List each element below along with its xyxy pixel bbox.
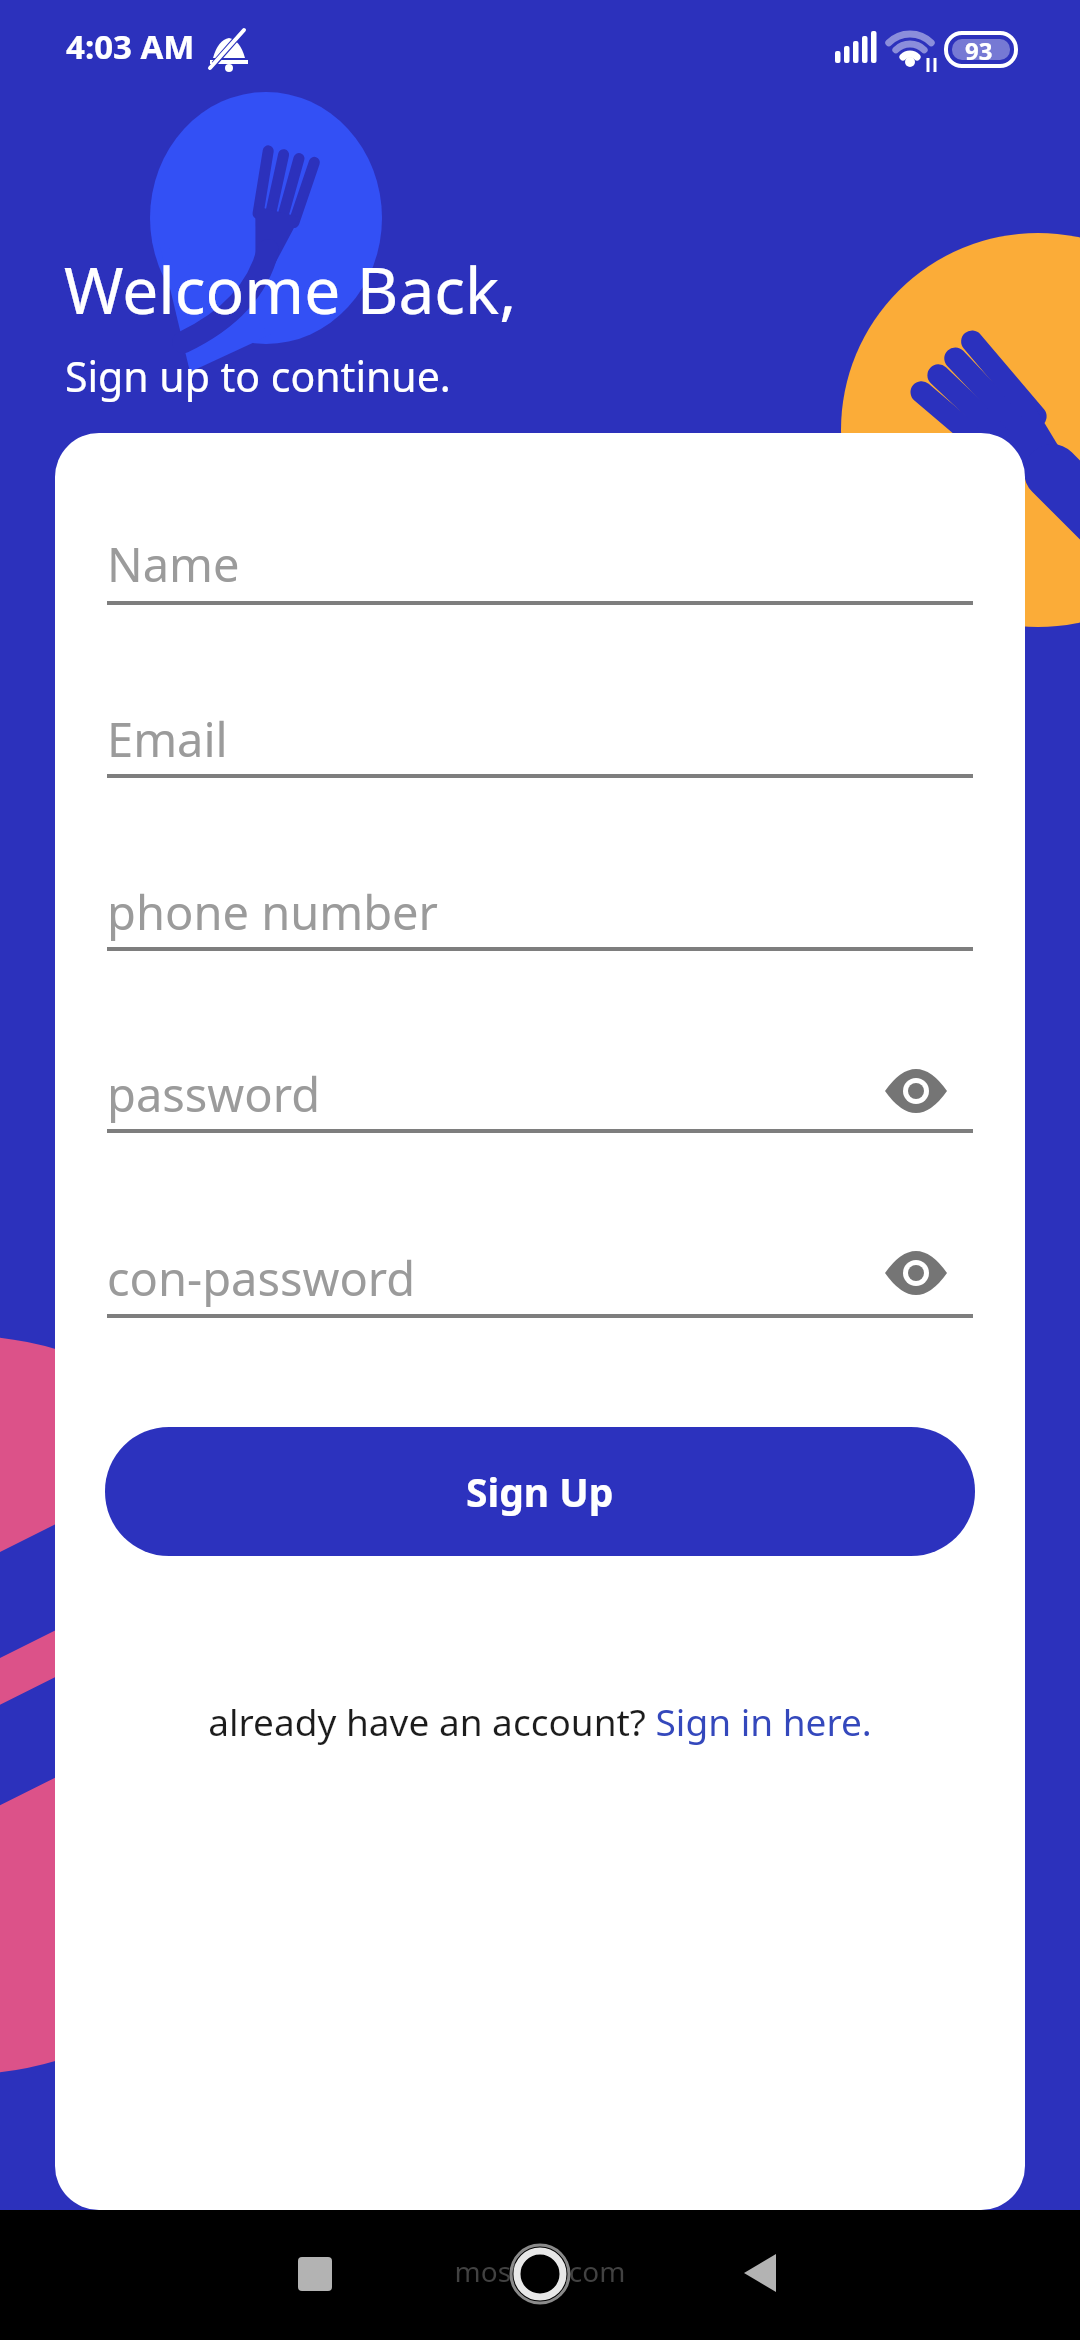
staticText: phone number xyxy=(107,880,439,944)
staticText: con-password xyxy=(107,1246,416,1310)
staticText: Sign Up xyxy=(466,1465,614,1518)
staticText: password xyxy=(107,1062,321,1126)
button[interactable]: Name xyxy=(107,532,973,605)
staticText: Email xyxy=(107,707,228,771)
button[interactable] xyxy=(505,2238,575,2308)
button[interactable]: phone number xyxy=(107,880,973,951)
staticText: 4:03 AM xyxy=(66,24,195,69)
staticText: mostaql.com xyxy=(0,2252,1080,2290)
button[interactable]: already have an account? Sign in here. xyxy=(55,1696,1025,1746)
button[interactable]: Sign Up xyxy=(105,1427,975,1556)
staticText: 93 xyxy=(965,34,993,67)
button[interactable] xyxy=(730,2238,800,2308)
button[interactable] xyxy=(280,2238,350,2308)
button[interactable]: password xyxy=(107,1062,973,1133)
staticText: Sign up to continue. xyxy=(65,348,451,404)
staticText: Welcome Back, xyxy=(64,246,517,333)
staticText: Name xyxy=(107,532,240,596)
button[interactable]: con-password xyxy=(107,1246,973,1318)
button[interactable]: Email xyxy=(107,707,973,778)
